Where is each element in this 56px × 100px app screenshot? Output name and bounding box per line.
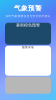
staticText: 实时气象预警信息与安全防护建议 bbox=[5, 14, 50, 18]
staticText: 预警详情 bbox=[22, 46, 34, 49]
staticText: 暴雨橙色预警 bbox=[16, 23, 40, 28]
staticText: 气象预警 bbox=[14, 4, 42, 12]
